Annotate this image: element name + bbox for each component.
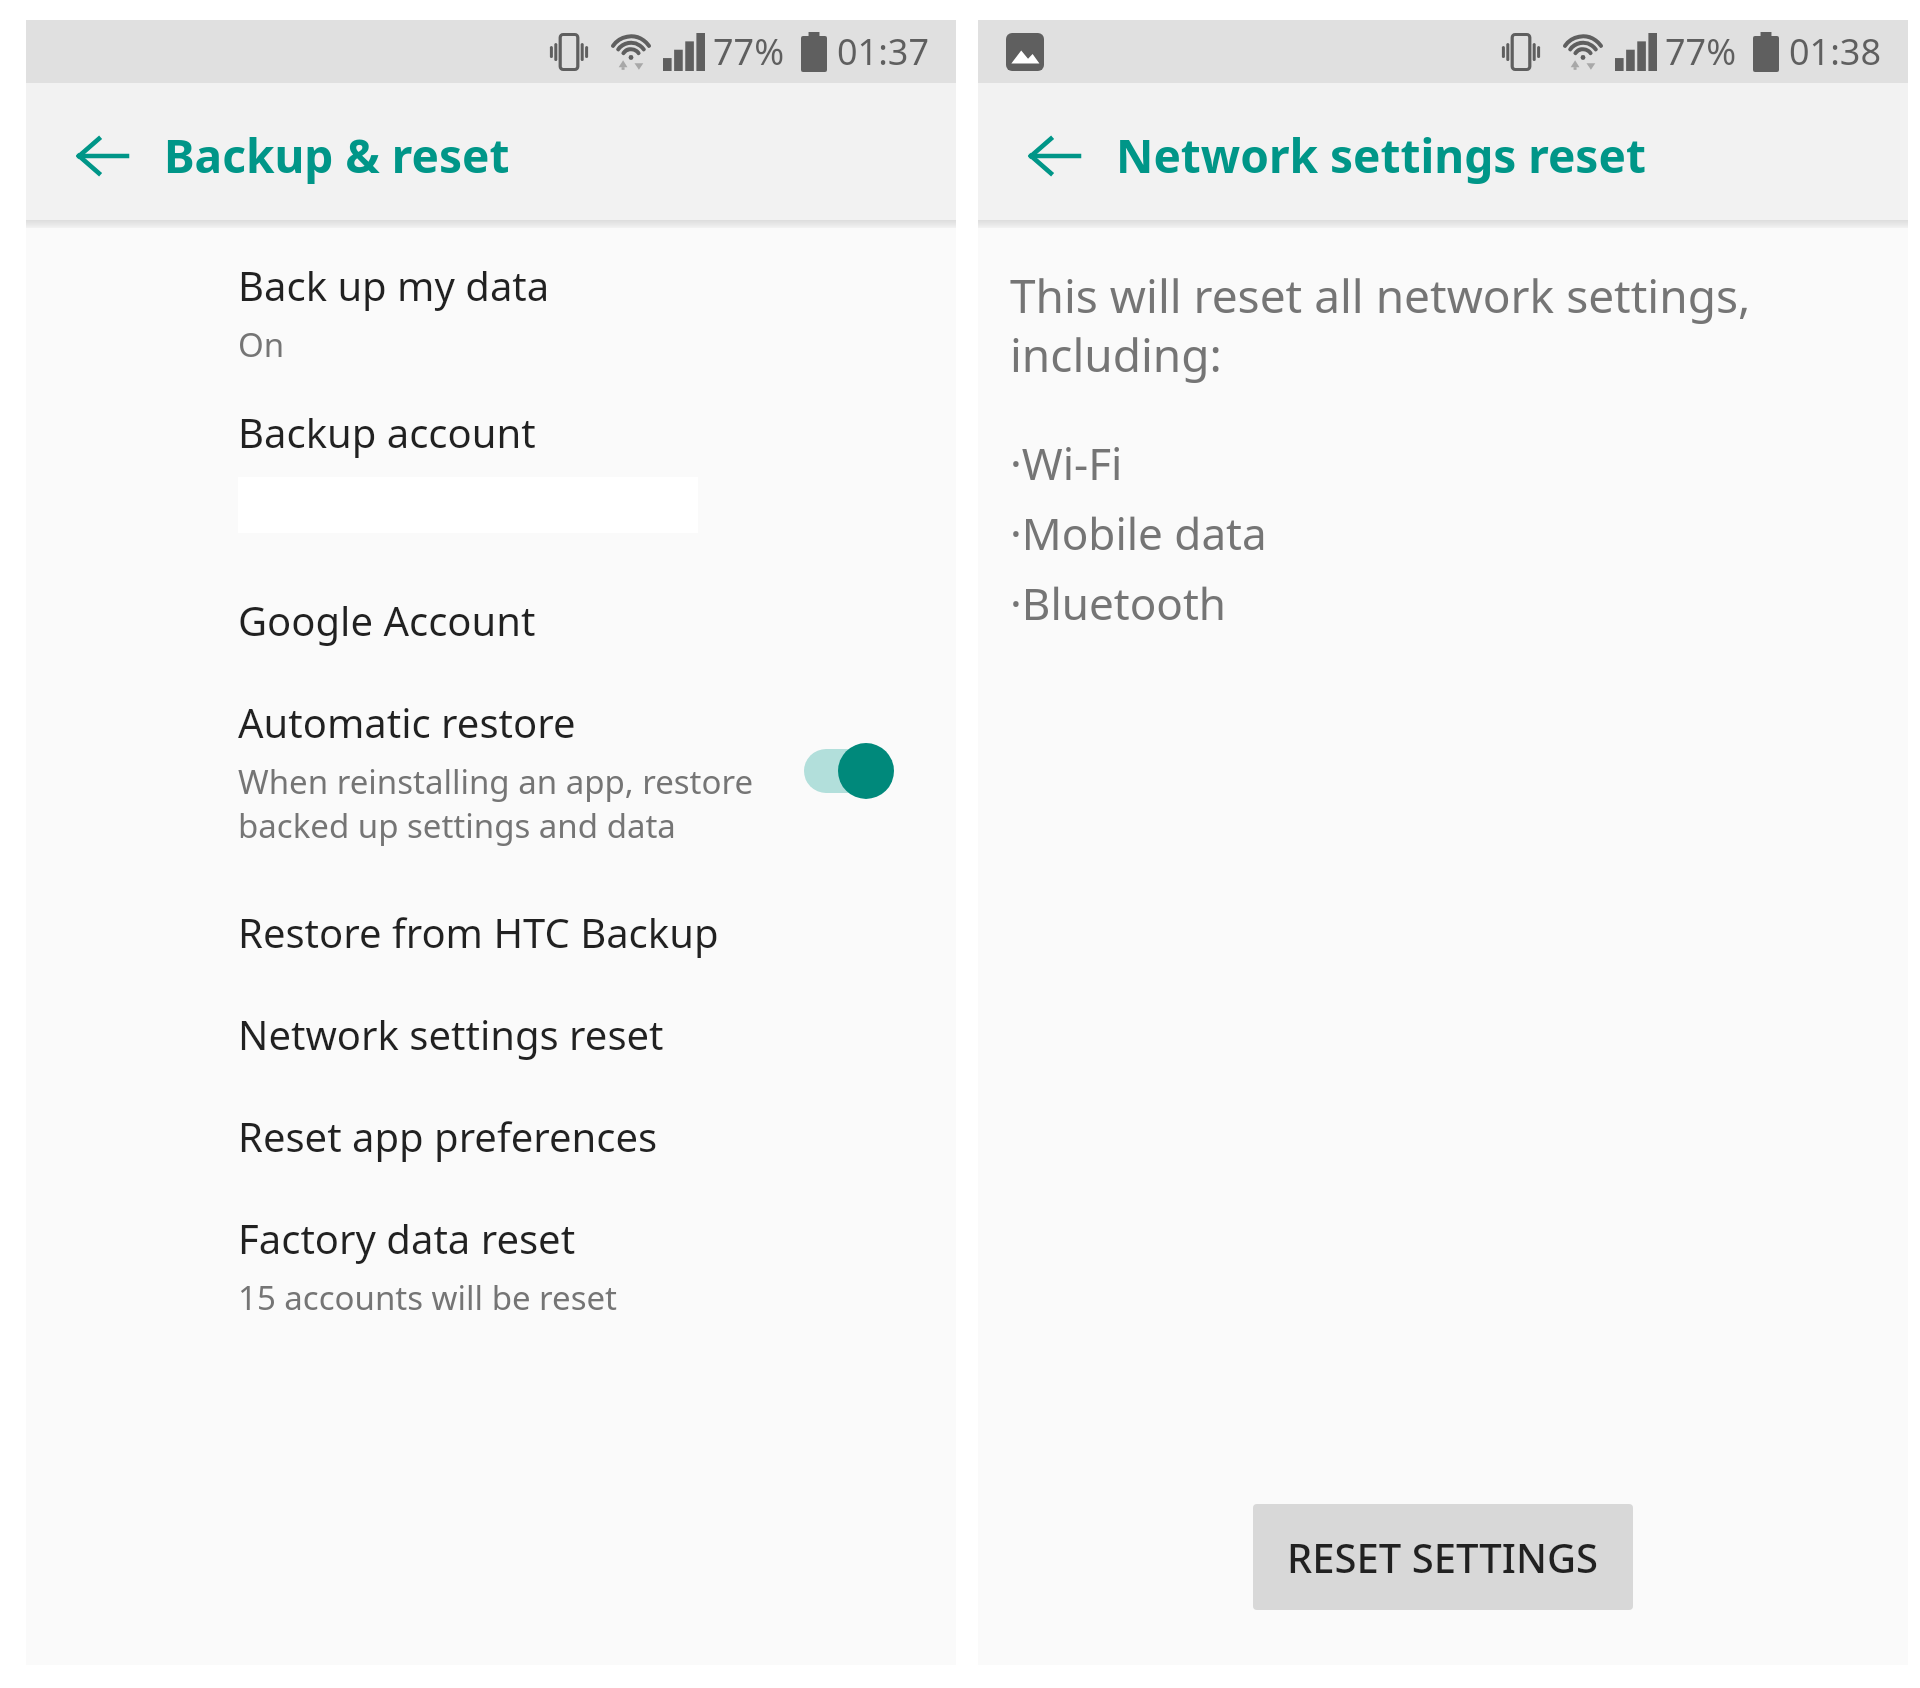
staticText: 15 accounts will be reset bbox=[238, 1275, 618, 1320]
staticText: Reset app preferences bbox=[238, 1109, 658, 1163]
staticText: Google Account bbox=[238, 593, 536, 647]
staticText: 01:38 bbox=[1789, 27, 1882, 76]
staticText: RESET SETTINGS bbox=[1287, 1530, 1599, 1584]
button[interactable]: Automatic restore toggle bbox=[800, 741, 896, 801]
staticText: When reinstalling an app, restore backed… bbox=[238, 759, 754, 847]
staticText: On bbox=[238, 322, 285, 367]
staticText: Restore from HTC Backup bbox=[238, 905, 719, 959]
button[interactable]: Back up my data bbox=[26, 258, 956, 367]
staticText: Automatic restore bbox=[238, 695, 576, 749]
button[interactable]: Back bbox=[1016, 118, 1092, 194]
button[interactable]: Restore from HTC Backup bbox=[26, 905, 956, 959]
button[interactable]: Reset app preferences bbox=[26, 1109, 956, 1163]
staticText: 77% bbox=[713, 27, 785, 76]
staticText: Back up my data bbox=[238, 258, 550, 312]
button[interactable]: Backup account bbox=[26, 405, 956, 533]
button[interactable]: Automatic restore bbox=[26, 695, 956, 847]
staticText: Network settings reset bbox=[238, 1007, 664, 1061]
staticText: Backup & reset bbox=[164, 124, 510, 187]
staticText: ·Mobile data bbox=[1010, 503, 1267, 563]
staticText: Factory data reset bbox=[238, 1211, 576, 1265]
staticText: 01:37 bbox=[837, 27, 930, 76]
staticText: Network settings reset bbox=[1116, 124, 1646, 187]
staticText: ·Wi-Fi bbox=[1010, 433, 1123, 493]
button[interactable]: RESET SETTINGS bbox=[1253, 1504, 1633, 1610]
button[interactable]: Network settings reset bbox=[26, 1007, 956, 1061]
button[interactable]: Factory data reset bbox=[26, 1211, 956, 1320]
staticText: 77% bbox=[1665, 27, 1737, 76]
staticText: This will reset all network settings, in… bbox=[1010, 264, 1751, 385]
staticText: ·Bluetooth bbox=[1010, 573, 1226, 633]
button[interactable]: Back bbox=[64, 118, 140, 194]
button[interactable]: Google Account bbox=[26, 593, 956, 647]
staticText: Backup account bbox=[238, 405, 536, 459]
